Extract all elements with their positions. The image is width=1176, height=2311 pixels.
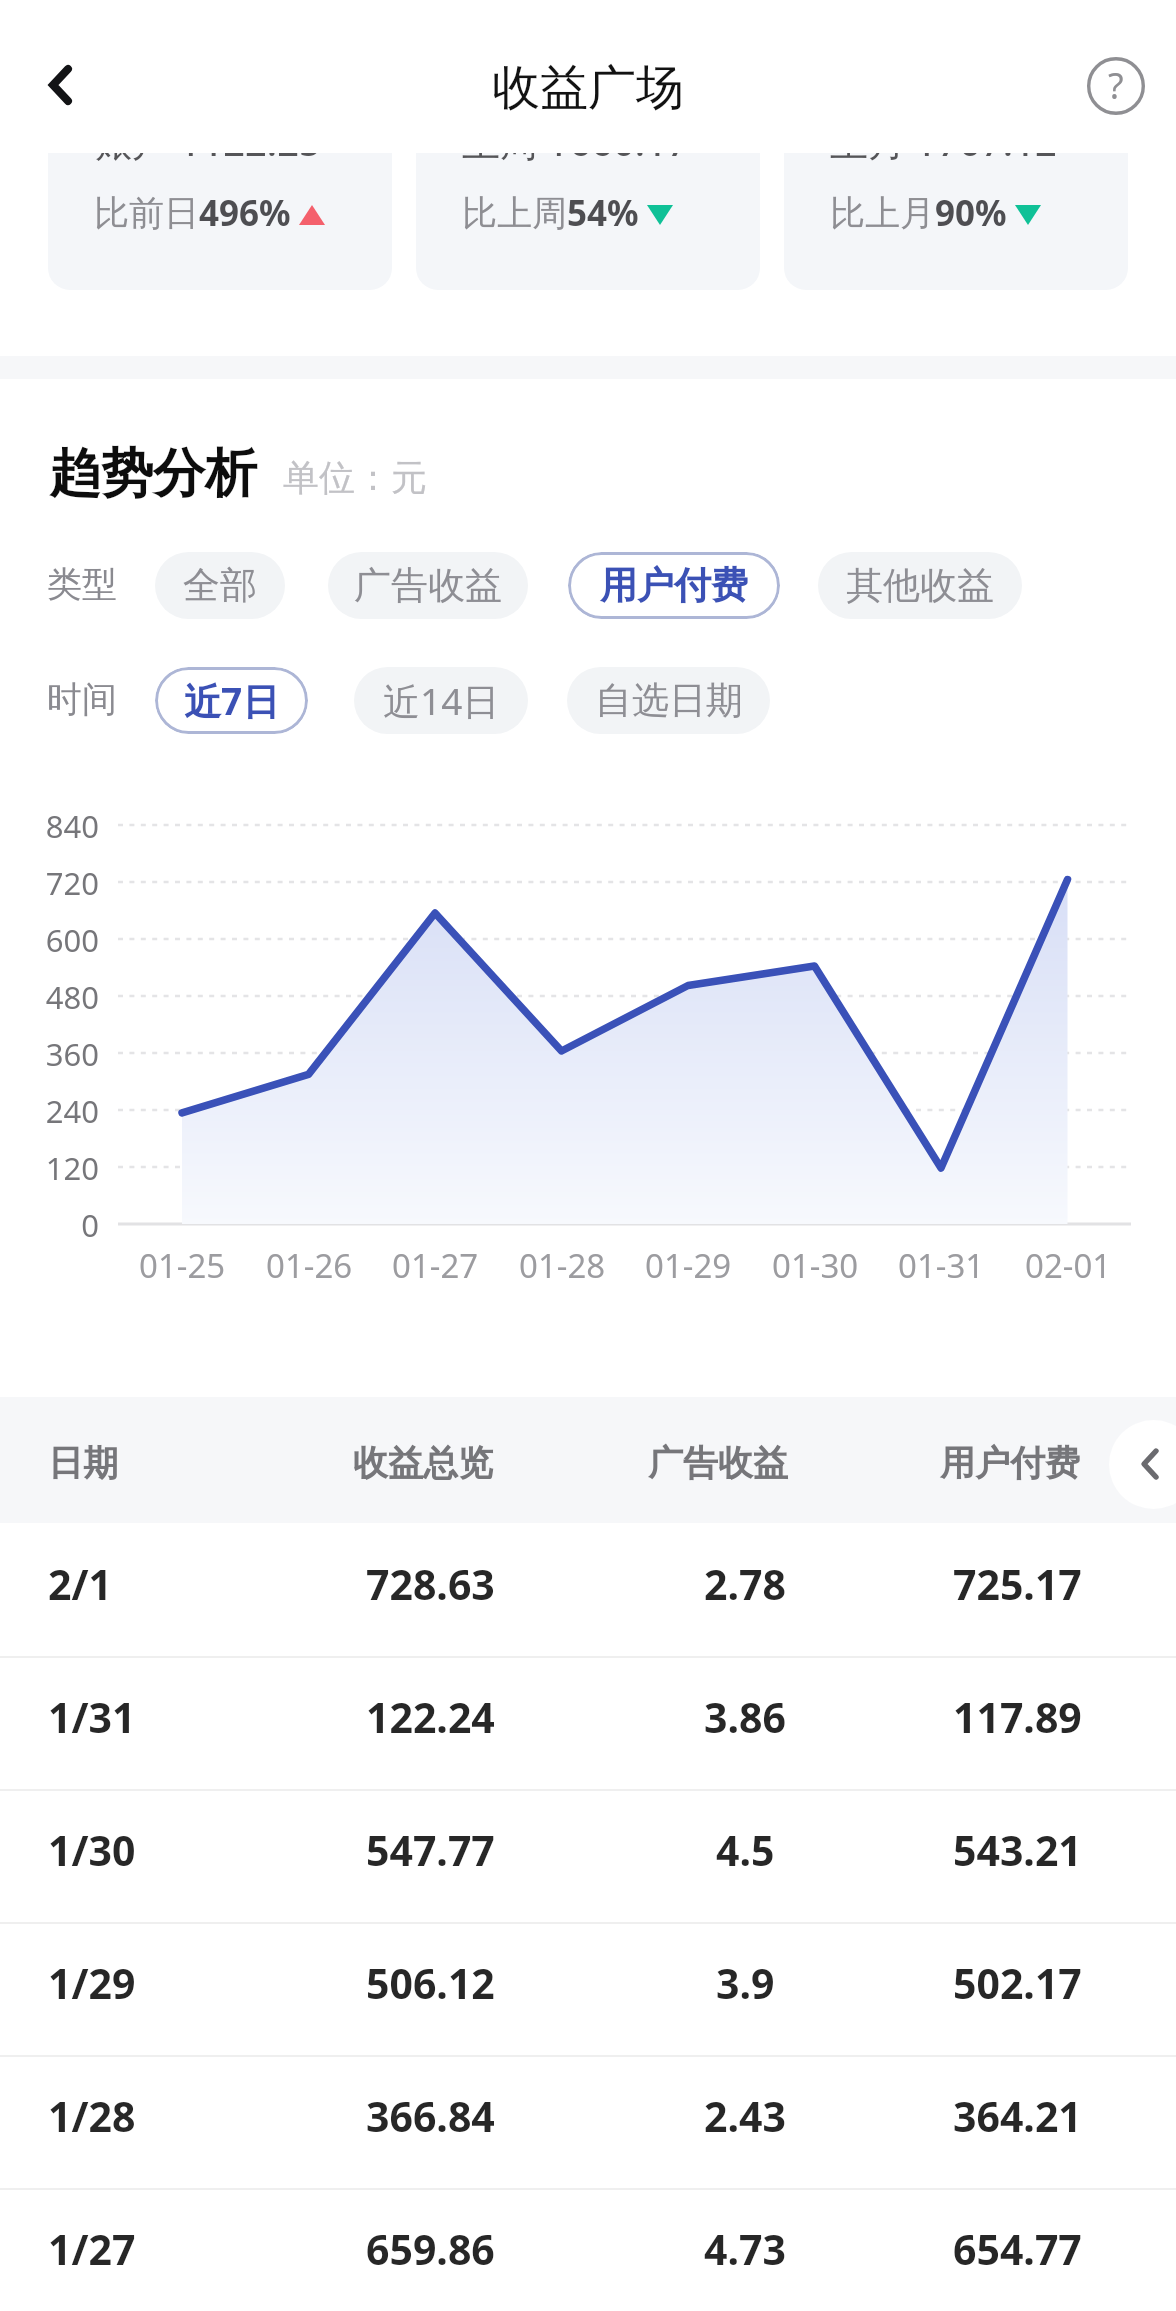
staticText: 506.12 bbox=[366, 1955, 495, 2011]
button[interactable]: 日期 bbox=[0, 1397, 1176, 1523]
staticText: 360 bbox=[45, 1033, 99, 1075]
staticText: 用户付费 bbox=[940, 1441, 1080, 1485]
button[interactable]: 上月 ¥707.12 bbox=[784, 68, 1128, 290]
button[interactable]: 全部 bbox=[155, 552, 285, 619]
staticText: 1/27 bbox=[48, 2221, 136, 2277]
staticText: 2.43 bbox=[704, 2088, 786, 2144]
button[interactable]: 1/29 bbox=[0, 1922, 1176, 2055]
staticText: 上月 ¥707.12 bbox=[830, 115, 1057, 167]
button[interactable]: 1/28 bbox=[0, 2055, 1176, 2188]
button[interactable]: 近14日 bbox=[354, 667, 528, 734]
button[interactable]: 自选日期 bbox=[567, 667, 770, 734]
button[interactable]: 近7日 bbox=[155, 667, 308, 734]
staticText: 122.24 bbox=[366, 1689, 495, 1745]
staticText: 全部 bbox=[183, 562, 257, 609]
staticText: 时间 bbox=[47, 677, 117, 721]
staticText: 1/31 bbox=[48, 1689, 136, 1745]
staticText: 趋势分析 bbox=[49, 441, 257, 507]
staticText: 比前日 bbox=[94, 191, 199, 235]
button[interactable]: 1/27 bbox=[0, 2188, 1176, 2311]
staticText: 上周 ¥660.17 bbox=[462, 115, 689, 167]
staticText: 01-29 bbox=[645, 1243, 732, 1288]
staticText: 120 bbox=[45, 1147, 99, 1189]
staticText: 广告收益 bbox=[648, 1441, 788, 1485]
staticText: ? bbox=[1108, 61, 1124, 110]
staticText: 547.77 bbox=[366, 1822, 495, 1878]
staticText: 01-30 bbox=[772, 1243, 859, 1288]
button[interactable]: Help bbox=[1072, 42, 1160, 130]
staticText: 01-27 bbox=[392, 1243, 479, 1288]
staticText: 240 bbox=[45, 1090, 99, 1132]
staticText: 单位：元 bbox=[283, 455, 427, 500]
staticText: 543.21 bbox=[953, 1822, 1082, 1878]
staticText: 01-25 bbox=[139, 1243, 226, 1288]
staticText: 659.86 bbox=[366, 2221, 495, 2277]
button[interactable]: 1/31 bbox=[0, 1656, 1176, 1789]
staticText: 496% bbox=[199, 189, 291, 237]
button[interactable]: Scroll columns left bbox=[1109, 1420, 1176, 1509]
staticText: 366.84 bbox=[366, 2088, 495, 2144]
staticText: 02-01 bbox=[1025, 1243, 1112, 1288]
staticText: 1/29 bbox=[48, 1955, 136, 2011]
button[interactable]: 1/30 bbox=[0, 1789, 1176, 1922]
staticText: 654.77 bbox=[953, 2221, 1082, 2277]
staticText: 3.86 bbox=[704, 1689, 786, 1745]
button[interactable]: Back bbox=[16, 41, 104, 129]
staticText: 广告收益 bbox=[354, 562, 502, 609]
button[interactable]: 上周 ¥660.17 bbox=[416, 68, 760, 290]
staticText: 480 bbox=[45, 976, 99, 1018]
staticText: 3.9 bbox=[716, 1955, 775, 2011]
button[interactable]: 2/1 bbox=[0, 1523, 1176, 1656]
staticText: 840 bbox=[45, 805, 99, 847]
staticText: 近7日 bbox=[184, 675, 280, 726]
staticText: 2.78 bbox=[704, 1556, 786, 1612]
staticText: 0 bbox=[81, 1204, 99, 1246]
staticText: 4.73 bbox=[704, 2221, 786, 2277]
staticText: 账户 ¥122.25 bbox=[94, 115, 321, 167]
staticText: 720 bbox=[45, 862, 99, 904]
button[interactable]: 账户 ¥122.25 bbox=[48, 68, 392, 290]
button[interactable]: 广告收益 bbox=[328, 552, 528, 619]
staticText: 90% bbox=[935, 189, 1007, 237]
staticText: 600 bbox=[45, 919, 99, 961]
staticText: 01-31 bbox=[898, 1243, 985, 1288]
staticText: 比上周 bbox=[462, 191, 567, 235]
staticText: 4.5 bbox=[716, 1822, 775, 1878]
staticText: 54% bbox=[567, 189, 639, 237]
staticText: 比上月 bbox=[830, 191, 935, 235]
staticText: 2/1 bbox=[48, 1556, 112, 1612]
staticText: 自选日期 bbox=[595, 677, 743, 724]
staticText: 728.63 bbox=[366, 1556, 495, 1612]
button[interactable]: 用户付费 bbox=[568, 552, 780, 619]
staticText: 用户付费 bbox=[600, 562, 748, 609]
staticText: 364.21 bbox=[953, 2088, 1082, 2144]
staticText: 1/30 bbox=[48, 1822, 136, 1878]
staticText: 类型 bbox=[47, 562, 117, 606]
staticText: 725.17 bbox=[953, 1556, 1082, 1612]
staticText: 近14日 bbox=[383, 675, 500, 726]
staticText: 收益广场 bbox=[492, 58, 684, 118]
button[interactable]: 其他收益 bbox=[818, 552, 1022, 619]
staticText: 其他收益 bbox=[846, 562, 994, 609]
staticText: 502.17 bbox=[953, 1955, 1082, 2011]
staticText: 01-26 bbox=[266, 1243, 353, 1288]
staticText: 收益总览 bbox=[353, 1441, 493, 1485]
staticText: 日期 bbox=[48, 1441, 118, 1485]
staticText: 117.89 bbox=[953, 1689, 1082, 1745]
staticText: 1/28 bbox=[48, 2088, 136, 2144]
staticText: 01-28 bbox=[519, 1243, 606, 1288]
